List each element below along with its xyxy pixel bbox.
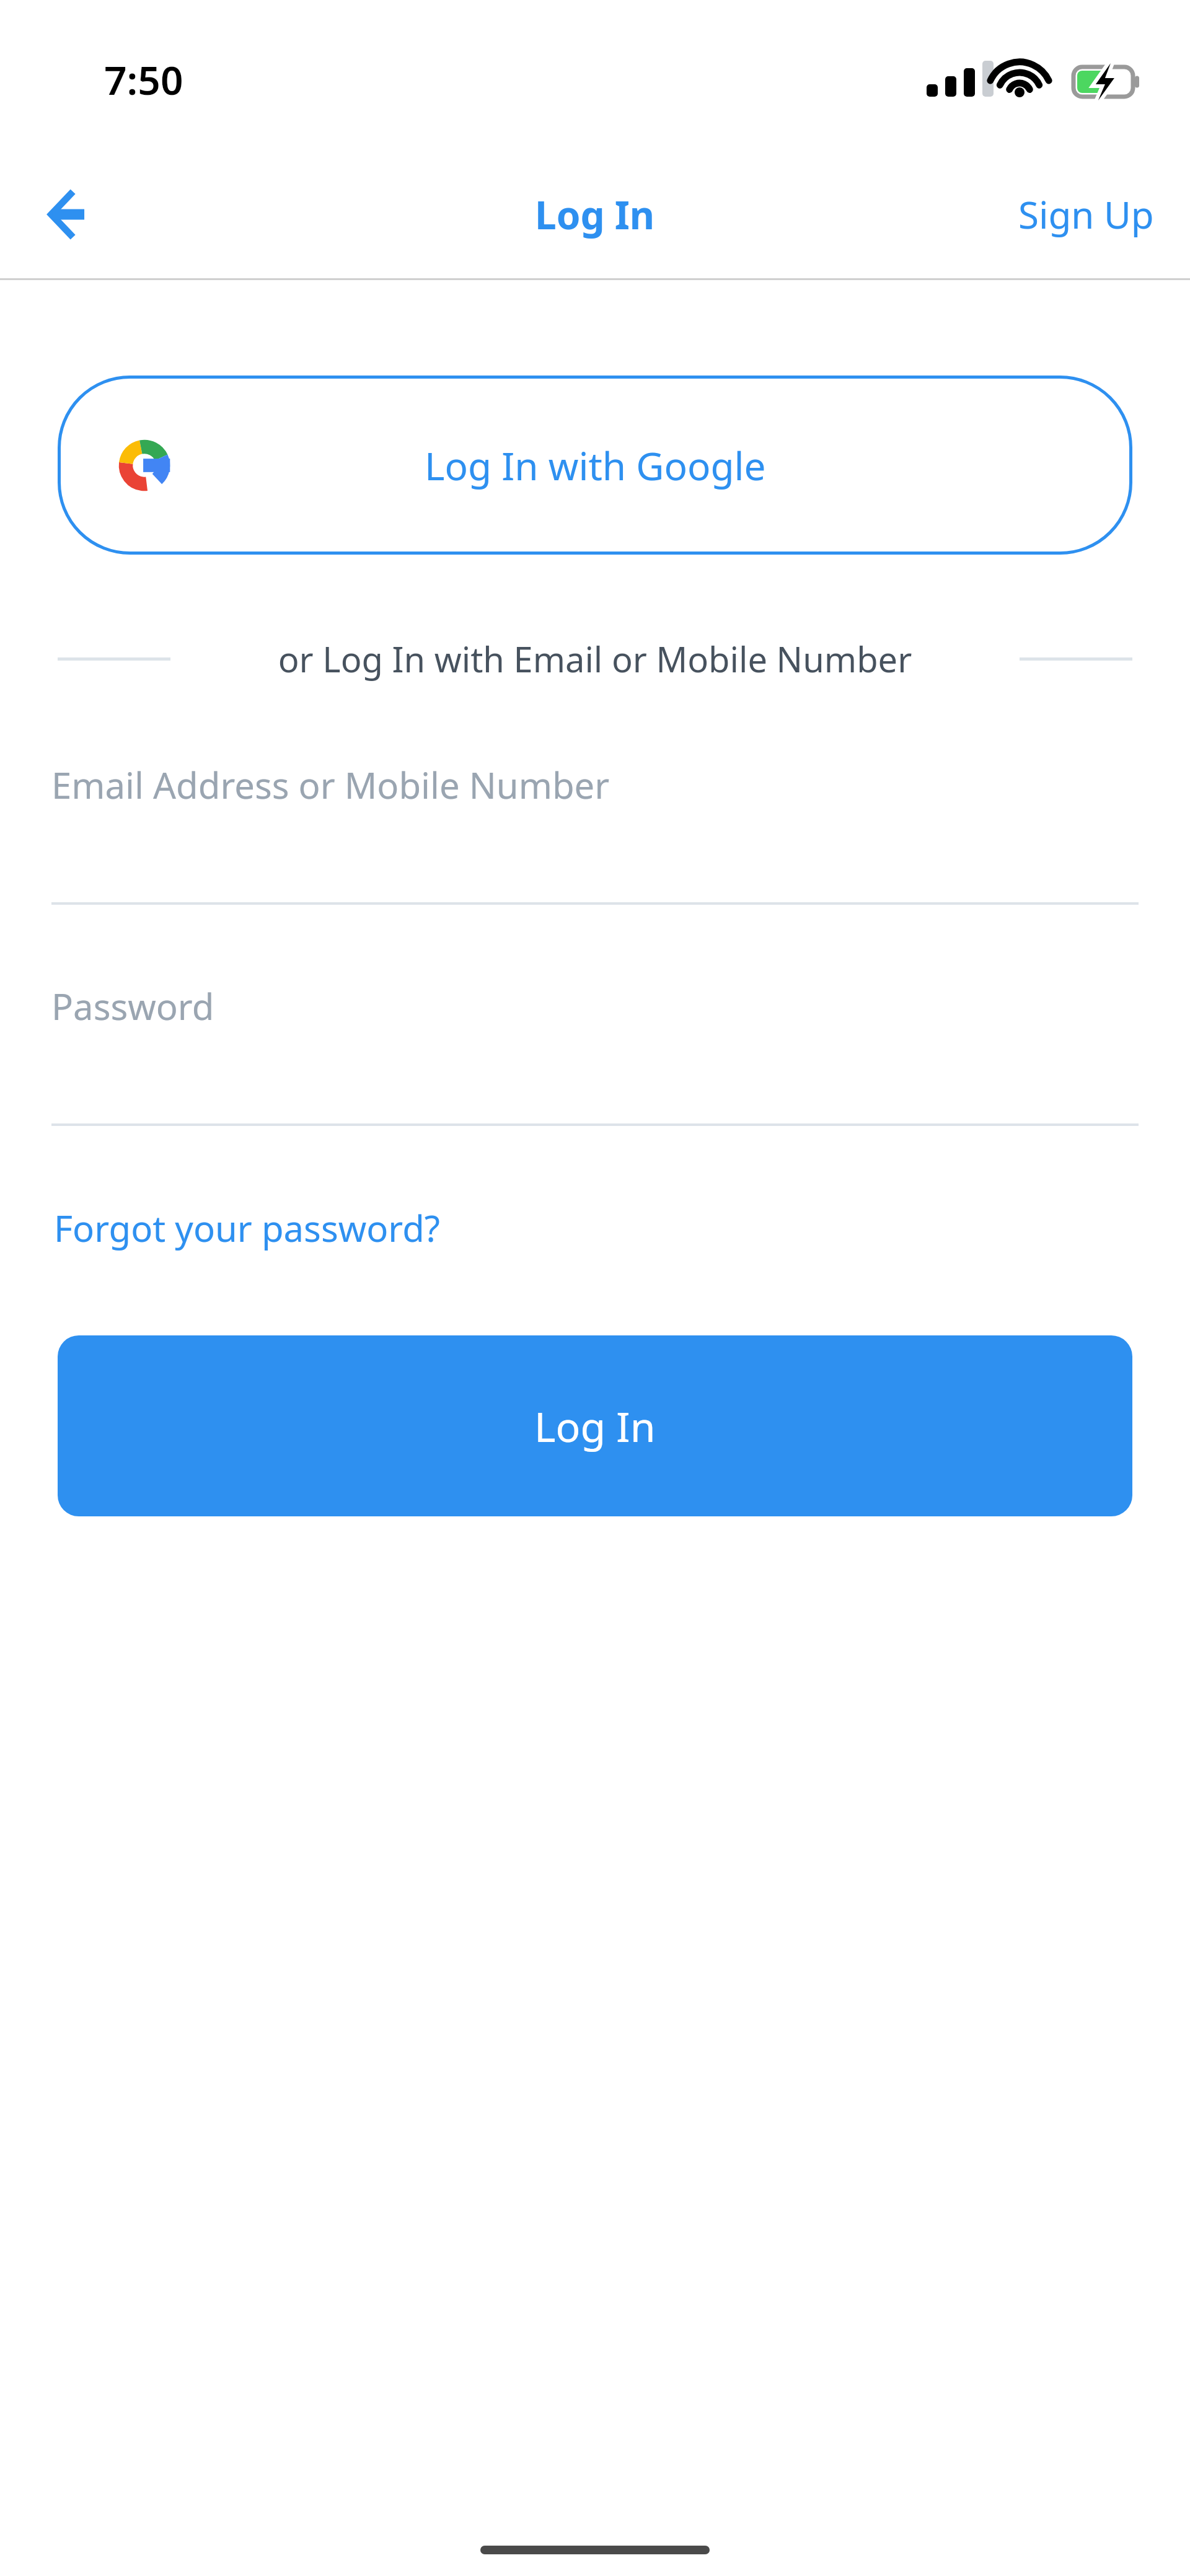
staticText: Sign Up (1018, 189, 1154, 240)
button[interactable]: Forgot your password? (51, 1197, 443, 1259)
button[interactable]: Back (37, 174, 118, 255)
staticText: or Log In with Email or Mobile Number (187, 635, 1003, 682)
button[interactable]: Log In with Google (58, 376, 1132, 555)
staticText: Log In (535, 188, 655, 240)
staticText: Log In with Google (425, 439, 766, 491)
button[interactable]: Email Address or Mobile Number (51, 760, 1139, 905)
button[interactable]: Password (51, 982, 1139, 1126)
staticText: 7:50 (104, 53, 183, 107)
button[interactable]: Sign Up (1007, 177, 1165, 252)
staticText: Password (51, 982, 214, 1031)
staticText: Log In (534, 1398, 656, 1454)
staticText: Forgot your password? (54, 1203, 440, 1252)
button[interactable]: Log In (58, 1335, 1132, 1516)
staticText: Email Address or Mobile Number (51, 760, 610, 809)
